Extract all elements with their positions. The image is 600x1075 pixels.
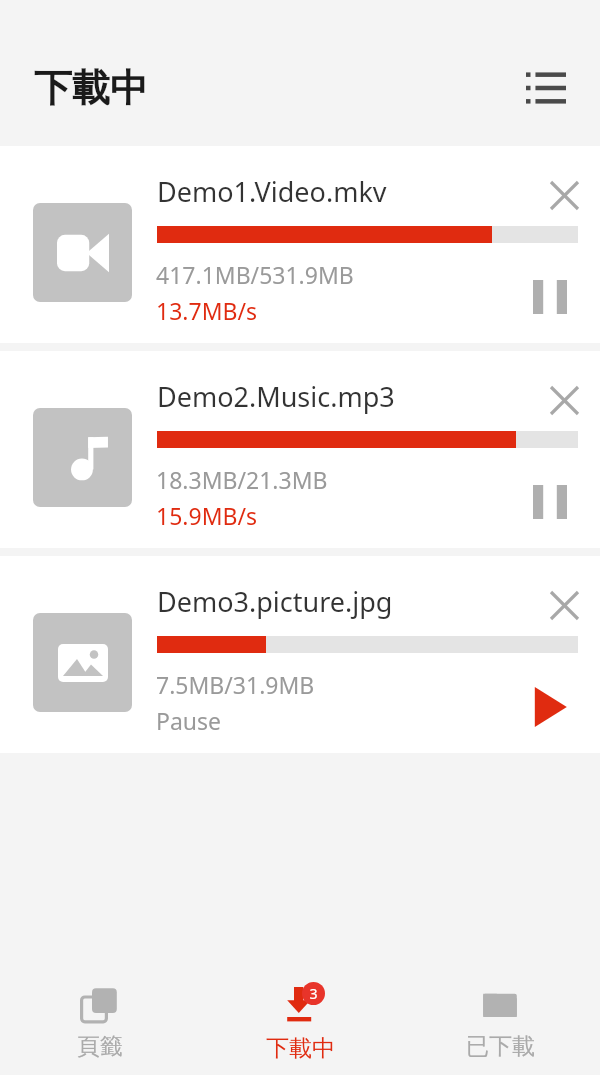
button[interactable]: Pause download <box>512 464 588 540</box>
button[interactable]: 已下載 <box>400 971 600 1075</box>
staticText: 13.7MB/s <box>156 295 258 326</box>
button[interactable]: 頁籤 <box>0 971 200 1075</box>
button[interactable]: 3 <box>200 971 400 1075</box>
button[interactable]: Cancel download <box>540 171 588 219</box>
button[interactable]: Pause download <box>512 259 588 335</box>
staticText: 頁籤 <box>77 1032 123 1061</box>
staticText: 15.9MB/s <box>156 500 258 531</box>
staticText: 417.1MB/531.9MB <box>156 259 354 290</box>
staticText: 下載中 <box>266 1034 335 1063</box>
button[interactable]: List view options <box>518 60 574 116</box>
button[interactable]: Demo1.Video.mkv <box>0 146 600 343</box>
staticText: Demo2.Music.mp3 <box>157 378 395 415</box>
staticText: Demo1.Video.mkv <box>157 173 387 210</box>
button[interactable]: Cancel download <box>540 581 588 629</box>
staticText: Demo3.picture.jpg <box>157 583 393 620</box>
staticText: 18.3MB/21.3MB <box>156 464 328 495</box>
button[interactable]: Cancel download <box>540 376 588 424</box>
staticText: Pause <box>156 705 222 736</box>
button[interactable]: Demo3.picture.jpg <box>0 556 600 753</box>
staticText: 3 <box>309 984 318 1003</box>
staticText: 7.5MB/31.9MB <box>156 669 315 700</box>
staticText: 已下載 <box>466 1032 535 1061</box>
button[interactable]: Demo2.Music.mp3 <box>0 351 600 548</box>
button[interactable]: Resume download <box>512 669 588 745</box>
staticText: 下載中 <box>34 64 148 112</box>
